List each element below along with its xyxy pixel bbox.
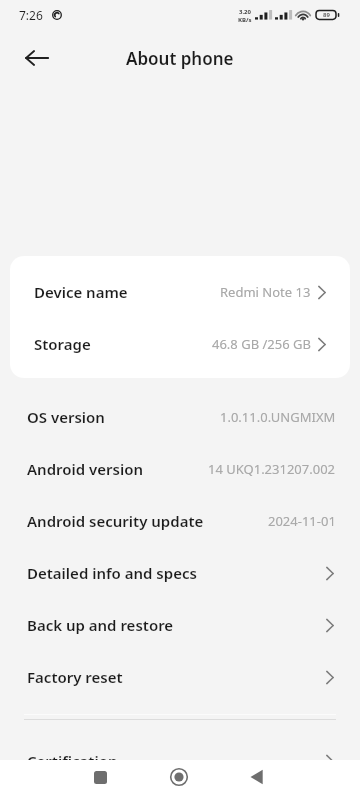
staticText: 3.20 — [239, 8, 251, 16]
staticText: Device name — [34, 282, 128, 302]
button[interactable]: Back — [14, 35, 60, 81]
button[interactable]: Home — [165, 763, 193, 791]
staticText: 46.8 GB /256 GB — [212, 335, 311, 353]
button[interactable]: OS version — [0, 391, 360, 443]
button[interactable]: Recent apps — [86, 763, 114, 791]
staticText: Android security update — [27, 511, 204, 531]
staticText: 89 — [323, 11, 330, 19]
staticText: About phone — [126, 47, 234, 70]
staticText: 2024-11-01 — [268, 512, 336, 530]
button[interactable]: Android security update — [0, 495, 360, 547]
button[interactable]: Back up and restore — [0, 599, 360, 651]
button[interactable]: Device name — [10, 266, 350, 318]
staticText: Certification — [27, 751, 118, 771]
staticText: Storage — [34, 334, 91, 354]
staticText: OS version — [27, 407, 105, 427]
button[interactable]: Detailed info and specs — [0, 547, 360, 599]
button[interactable]: Android version — [0, 443, 360, 495]
staticText: KB/s — [238, 16, 252, 24]
staticText: Back up and restore — [27, 615, 174, 635]
button[interactable]: Storage — [10, 318, 350, 370]
button[interactable]: Certification — [0, 735, 360, 787]
staticText: Detailed info and specs — [27, 563, 197, 583]
staticText: Redmi Note 13 — [220, 283, 311, 301]
staticText: Factory reset — [27, 667, 123, 687]
staticText: 1.0.11.0.UNGMIXM — [220, 408, 336, 426]
staticText: 14 UKQ1.231207.002 — [208, 460, 336, 478]
button[interactable]: Factory reset — [0, 651, 360, 703]
staticText: Android version — [27, 459, 143, 479]
button[interactable]: Back — [243, 763, 271, 791]
staticText: 7:26 — [19, 7, 43, 23]
